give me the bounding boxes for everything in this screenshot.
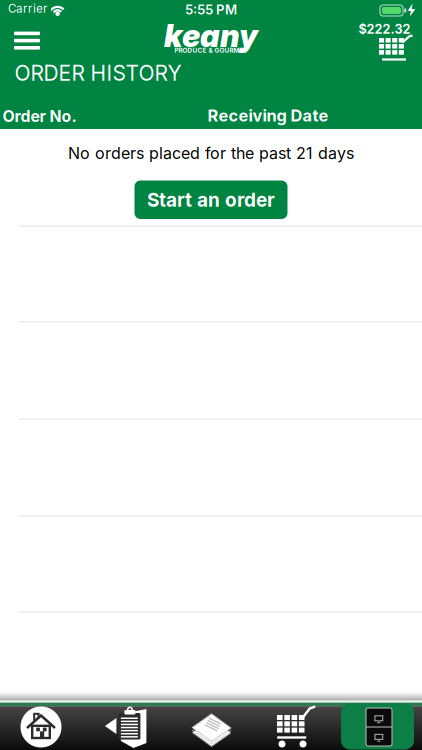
staticText: Start an order <box>147 188 275 211</box>
staticText: ORDER HISTORY <box>14 60 181 86</box>
button[interactable]: Start an order <box>134 180 287 219</box>
staticText: Order No. <box>2 107 76 126</box>
staticText: 5:55 PM <box>185 2 237 18</box>
button[interactable] <box>338 703 422 750</box>
staticText: PRODUCE & GOURMET <box>174 46 247 54</box>
button[interactable] <box>169 703 253 750</box>
staticText: $222.32 <box>358 21 410 37</box>
button[interactable] <box>253 703 338 750</box>
staticText: No orders placed for the past 21 days <box>68 143 354 163</box>
button[interactable] <box>84 703 169 750</box>
button[interactable] <box>7 25 47 57</box>
button[interactable] <box>0 703 84 750</box>
staticText: keany <box>164 17 258 54</box>
staticText: Carrier <box>8 1 47 15</box>
button[interactable] <box>372 33 418 65</box>
staticText: Receiving Date <box>207 105 328 125</box>
